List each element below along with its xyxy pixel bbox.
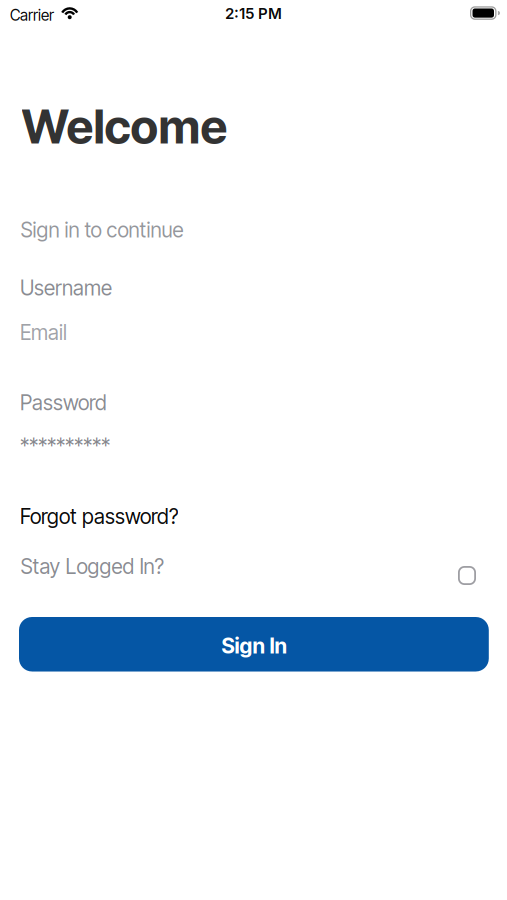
staticText: Carrier xyxy=(10,6,54,24)
staticText: Sign in to continue xyxy=(20,217,183,242)
staticText: Username xyxy=(20,275,112,300)
staticText: Welcome xyxy=(21,98,227,155)
staticText: 2:15 PM xyxy=(225,4,282,22)
staticText: Email xyxy=(20,320,67,345)
staticText: ********** xyxy=(20,434,110,459)
staticText: Sign In xyxy=(221,633,287,659)
staticText: Forgot password? xyxy=(20,504,179,529)
staticText: Stay Logged In? xyxy=(20,554,164,579)
staticText: Password xyxy=(20,390,107,415)
